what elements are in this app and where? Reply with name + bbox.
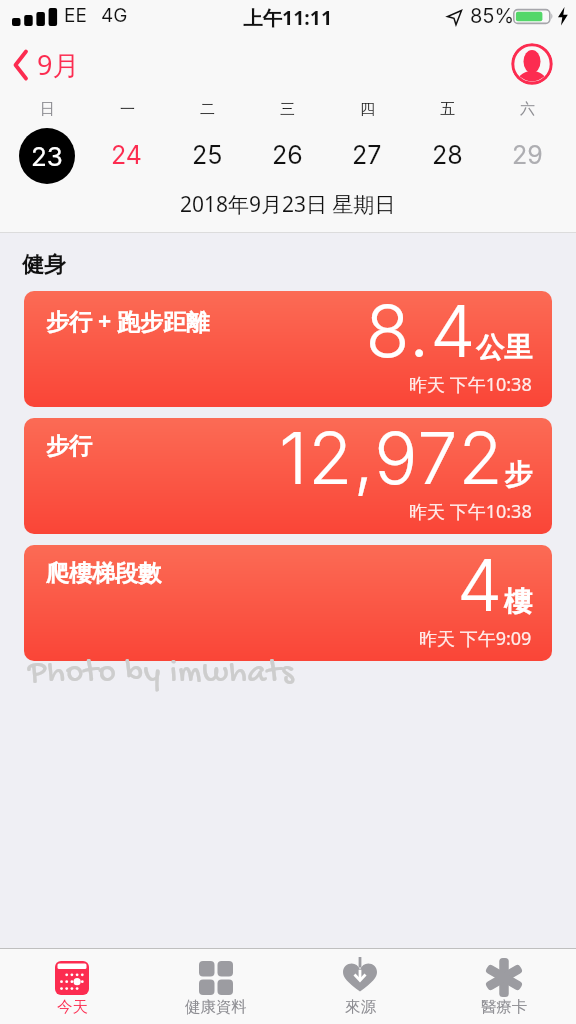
staticText: 12,972 [279,418,504,501]
staticText: 25 [192,140,223,170]
button[interactable]: 27 [327,140,407,170]
staticText: 三 [280,100,295,119]
staticText: 昨天 下午10:38 [409,499,532,524]
button[interactable]: 23 [19,128,75,184]
staticText: 9月 [37,46,80,83]
staticText: 29 [512,140,543,170]
staticText: 85% [470,4,515,28]
button[interactable]: 今天 [0,948,144,1024]
button[interactable]: 健康資料 [144,948,288,1024]
staticText: 二 [200,100,215,119]
staticText: 健身 [22,251,66,279]
staticText: 28 [432,140,463,170]
button[interactable] [511,43,553,85]
staticText: 4 [457,545,504,628]
button[interactable]: 步行 + 跑步距離 [24,291,552,407]
button[interactable]: 步行 [24,418,552,534]
staticText: 五 [440,100,455,119]
staticText: 四 [360,100,375,119]
staticText: 六 [520,100,535,119]
staticText: 上午11:11 [243,4,333,31]
button[interactable]: 來源 [288,948,432,1024]
button[interactable]: 29 [487,140,567,170]
button[interactable]: 25 [167,140,247,170]
staticText: 23 [31,141,63,172]
staticText: 昨天 下午9:09 [419,626,532,651]
button[interactable]: 24 [87,140,167,170]
staticText: Photo by imwhats [28,655,295,694]
button[interactable]: 9月 [12,46,80,83]
staticText: 日 [40,100,55,119]
staticText: 2018年9月23日 星期日 [180,190,396,219]
staticText: 醫療卡 [481,997,528,1017]
staticText: 昨天 下午10:38 [409,372,532,397]
button[interactable]: 28 [407,140,487,170]
staticText: 來源 [345,997,376,1017]
staticText: 4G [101,4,128,27]
button[interactable]: 26 [247,140,327,170]
staticText: 27 [352,140,382,170]
staticText: 步行 [46,432,92,461]
staticText: 26 [272,140,303,170]
staticText: 爬樓梯段數 [46,559,161,588]
button[interactable]: 爬樓梯段數 [24,545,552,661]
staticText: 健康資料 [185,997,247,1017]
staticText: 步 [504,457,532,492]
staticText: 今天 [57,997,88,1017]
staticText: EE [64,4,87,27]
staticText: 步行 + 跑步距離 [46,305,210,336]
staticText: 8.4 [365,291,476,374]
button[interactable]: 醫療卡 [432,948,576,1024]
staticText: 24 [111,140,143,170]
staticText: 公里 [476,330,532,365]
staticText: 一 [120,100,135,119]
staticText: 樓 [504,584,532,619]
